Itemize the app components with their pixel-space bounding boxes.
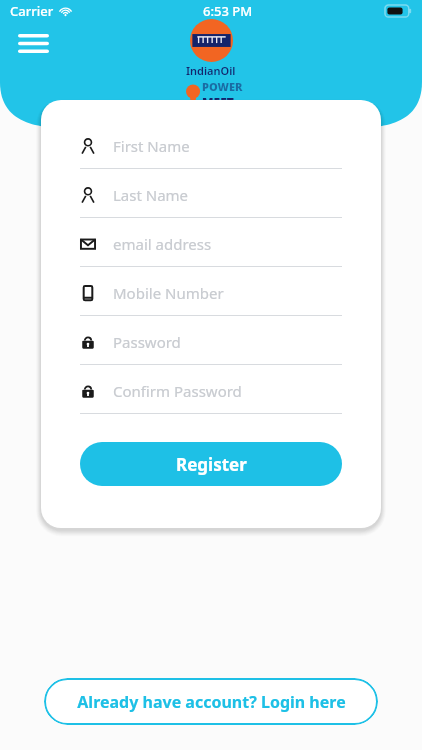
button[interactable]: Confirm Password: [80, 368, 342, 417]
button[interactable]: Already have account? Login here: [44, 678, 378, 725]
staticText: Confirm Password: [113, 381, 242, 401]
staticText: Carrier: [10, 2, 54, 20]
button[interactable]: Menu: [12, 28, 54, 58]
staticText: IndianOil: [186, 63, 236, 78]
button[interactable]: Register: [80, 442, 342, 486]
button[interactable]: Password: [80, 319, 342, 368]
staticText: email address: [113, 234, 212, 254]
button[interactable]: email address: [80, 221, 342, 270]
button[interactable]: Mobile Number: [80, 270, 342, 319]
staticText: Register: [176, 453, 247, 476]
button[interactable]: First Name: [80, 123, 342, 172]
staticText: First Name: [113, 136, 190, 156]
staticText: Password: [113, 332, 181, 352]
staticText: MEET: [202, 94, 234, 106]
staticText: 6:53 PM: [203, 2, 253, 20]
staticText: Already have account? Login here: [77, 691, 346, 713]
staticText: POWER: [202, 79, 243, 94]
button[interactable]: Last Name: [80, 172, 342, 221]
staticText: Mobile Number: [113, 283, 224, 303]
staticText: Last Name: [113, 185, 189, 205]
